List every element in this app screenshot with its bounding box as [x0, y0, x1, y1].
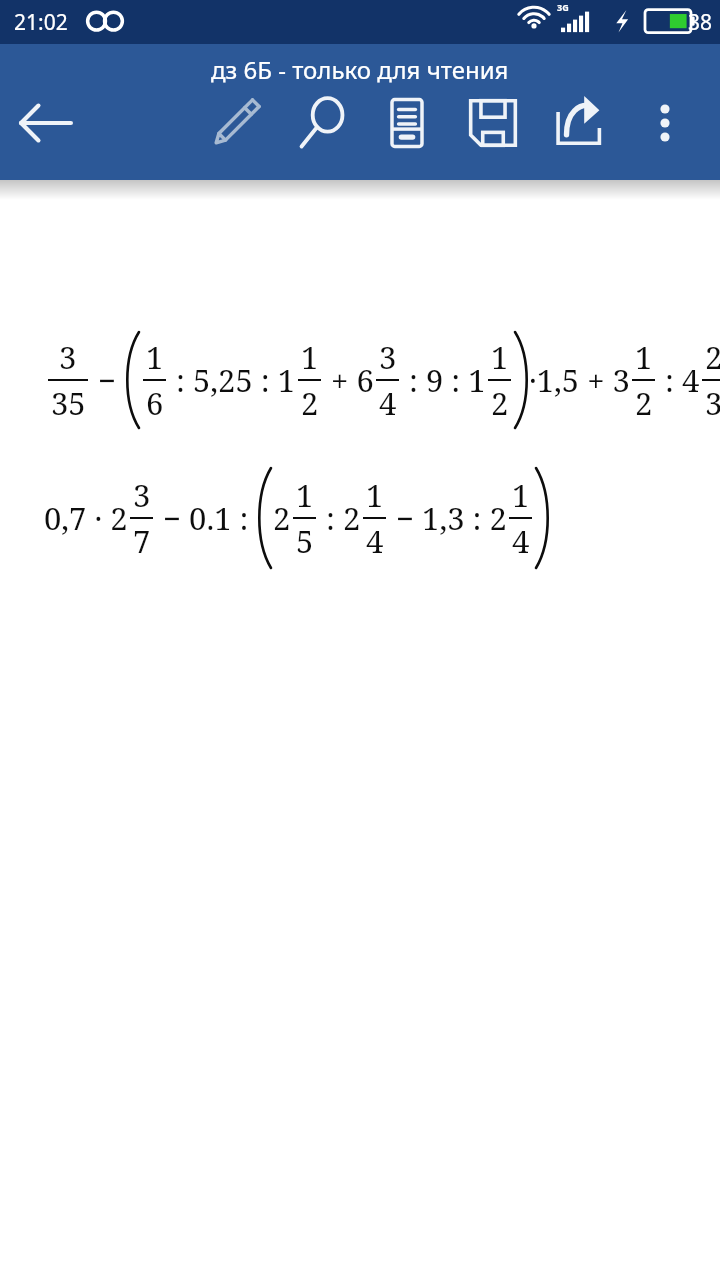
staticText: : 4 [657, 359, 700, 401]
staticText: 3 [59, 336, 77, 378]
staticText: 1 [301, 336, 319, 378]
staticText: 3 [133, 474, 151, 516]
staticText: 1 [635, 336, 653, 378]
staticText: : 5,25 : 1 [168, 359, 296, 401]
staticText: 1 [296, 474, 314, 516]
staticText: 6 [146, 382, 164, 424]
button[interactable]: Back [10, 87, 82, 159]
staticText: 3 [379, 336, 397, 378]
button[interactable]: Save [457, 87, 529, 159]
staticText: 2 [301, 382, 319, 424]
staticText: − 0.1 : [155, 497, 257, 539]
staticText: 1 [366, 474, 384, 516]
staticText: 2 [273, 497, 291, 539]
staticText: 21:02 [14, 8, 68, 37]
staticText: дз 6Б - только для чтения [211, 53, 509, 86]
button[interactable]: Edit [200, 87, 272, 159]
staticText: 3 [705, 382, 720, 424]
staticText: 1 [491, 336, 509, 378]
button[interactable]: More options [629, 87, 701, 159]
staticText: 2 [635, 382, 653, 424]
staticText: 7 [133, 520, 151, 562]
button[interactable]: Share [544, 87, 616, 159]
button[interactable]: Contents [371, 87, 443, 159]
staticText: 4 [512, 520, 530, 562]
staticText: 2 [705, 336, 720, 378]
staticText: 2 [491, 382, 509, 424]
staticText: 38 [688, 8, 713, 37]
staticText: 1 [146, 336, 164, 378]
staticText: 0,7 · 2 [44, 497, 128, 539]
staticText: : 9 : 1 [401, 359, 486, 401]
staticText: 4 [379, 382, 397, 424]
staticText: + 6 [323, 359, 374, 401]
staticText: 3G [557, 1, 569, 13]
staticText: − 1,3 : 2 [388, 497, 507, 539]
staticText: 35 [51, 382, 86, 424]
staticText: 1 [512, 474, 530, 516]
staticText: − [90, 359, 125, 401]
staticText: : 2 [318, 497, 361, 539]
staticText: 5 [296, 520, 314, 562]
button[interactable]: Search [286, 87, 358, 159]
staticText: ·1,5 + 3 [529, 359, 630, 401]
staticText: 4 [366, 520, 384, 562]
